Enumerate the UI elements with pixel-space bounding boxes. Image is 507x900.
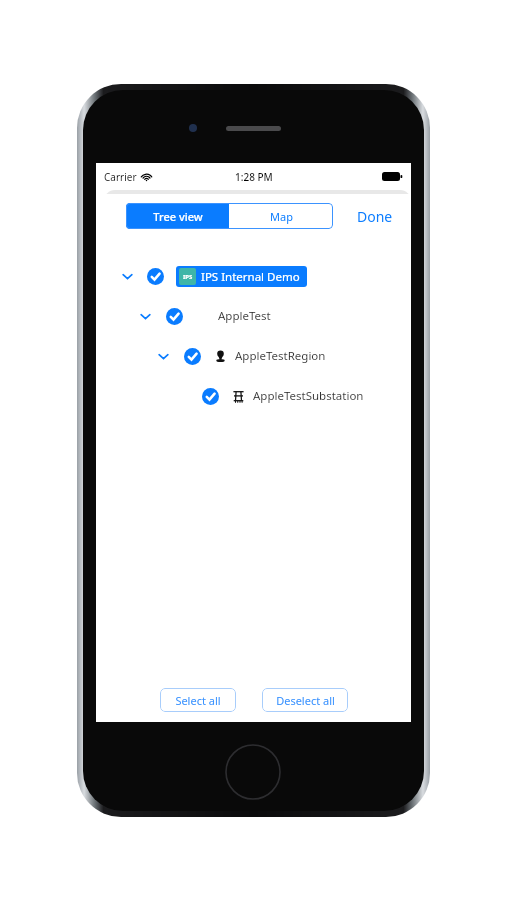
button[interactable]: Collapse IPS Internal Demo xyxy=(118,267,136,285)
button[interactable]: Selected AppleTestSubstation xyxy=(202,388,219,405)
button[interactable]: Selected AppleTestRegion xyxy=(184,348,201,365)
button[interactable]: Collapse AppleTestRegion xyxy=(154,347,172,365)
button[interactable]: Selected AppleTest xyxy=(166,308,183,325)
button[interactable]: Select all xyxy=(160,688,236,712)
staticText: IPS xyxy=(183,273,193,281)
staticText: Select all xyxy=(175,693,221,708)
button[interactable]: Selected AppleTestSubstation xyxy=(96,381,411,411)
button[interactable]: Selected IPS Internal Demo xyxy=(147,268,164,285)
staticText: AppleTest xyxy=(218,308,271,324)
staticText: AppleTestSubstation xyxy=(253,388,364,404)
staticText: IPS Internal Demo xyxy=(201,269,300,285)
button[interactable]: Done xyxy=(353,201,397,232)
staticText: Tree view xyxy=(153,209,203,224)
button[interactable]: Deselect all xyxy=(262,688,348,712)
button[interactable]: Collapse IPS Internal Demo xyxy=(96,261,411,291)
button[interactable]: Collapse AppleTest xyxy=(96,301,411,331)
staticText: 1:28 PM xyxy=(235,170,273,184)
staticText: Done xyxy=(357,207,393,226)
staticText: AppleTestRegion xyxy=(235,348,326,364)
button[interactable]: Tree view xyxy=(126,203,229,229)
button[interactable]: Collapse AppleTest xyxy=(136,307,154,325)
staticText: Carrier xyxy=(104,170,137,184)
button[interactable]: Map xyxy=(229,203,333,229)
button[interactable]: Collapse AppleTestRegion xyxy=(96,341,411,371)
staticText: Map xyxy=(270,209,293,224)
staticText: Deselect all xyxy=(276,693,335,708)
